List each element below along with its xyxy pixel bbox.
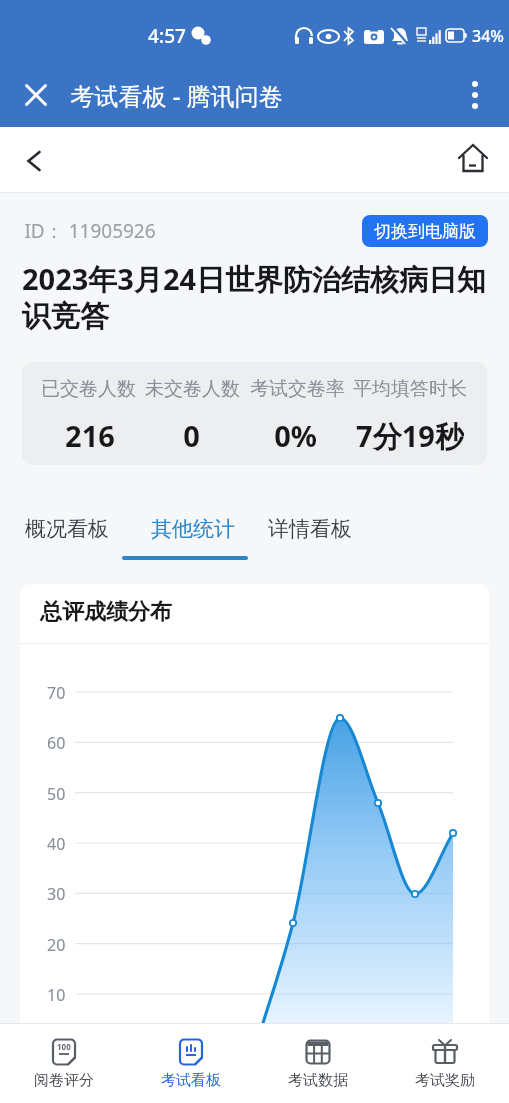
staticText: 阅卷评分 <box>34 1071 94 1090</box>
staticText: 切换到电脑版 <box>374 221 476 242</box>
staticText: 30 <box>47 883 66 903</box>
staticText: 10 <box>47 984 66 1004</box>
staticText: 考试看板 - 腾讯问卷 <box>70 79 283 112</box>
staticText: 0% <box>274 416 317 454</box>
staticText: 未交卷人数 <box>145 377 240 401</box>
staticText: 0 <box>183 416 200 454</box>
staticText: 其他统计 <box>151 516 235 542</box>
button[interactable]: 其他统计 <box>150 514 236 544</box>
button[interactable]: 考试奖励 <box>390 1026 500 1098</box>
button[interactable]: 概况看板 <box>24 514 110 544</box>
button[interactable] <box>16 75 56 115</box>
staticText: 34% <box>472 25 504 47</box>
button[interactable]: 考试看板 <box>136 1026 246 1098</box>
staticText: 70 <box>47 682 66 702</box>
staticText: 已交卷人数 <box>41 377 136 401</box>
button[interactable] <box>453 139 493 179</box>
button[interactable] <box>455 75 495 115</box>
staticText: 概况看板 <box>25 516 109 542</box>
staticText: 100 <box>57 1041 71 1052</box>
button[interactable]: 详情看板 <box>267 514 353 544</box>
staticText: 平均填答时长 <box>353 377 467 401</box>
staticText: 216 <box>65 416 115 454</box>
staticText: 考试看板 <box>161 1071 221 1090</box>
button[interactable]: 考试数据 <box>263 1026 373 1098</box>
staticText: 2023年3月24日世界防治结核病日知 识竞答 <box>22 259 487 334</box>
staticText: 40 <box>47 833 66 853</box>
staticText: 7分19秒 <box>356 416 464 454</box>
staticText: 50 <box>47 783 66 803</box>
staticText: 考试交卷率 <box>250 377 345 401</box>
staticText: 4:57 <box>148 23 186 49</box>
button[interactable]: 切换到电脑版 <box>362 215 488 247</box>
staticText: ID： 11905926 <box>24 218 156 244</box>
button[interactable] <box>14 141 54 181</box>
staticText: 考试奖励 <box>415 1071 475 1090</box>
staticText: 总评成绩分布 <box>40 598 172 626</box>
staticText: 60 <box>47 732 66 752</box>
staticText: 考试数据 <box>288 1071 348 1090</box>
staticText: 20 <box>47 934 66 954</box>
staticText: 详情看板 <box>268 516 352 542</box>
button[interactable]: 100 <box>9 1026 119 1098</box>
